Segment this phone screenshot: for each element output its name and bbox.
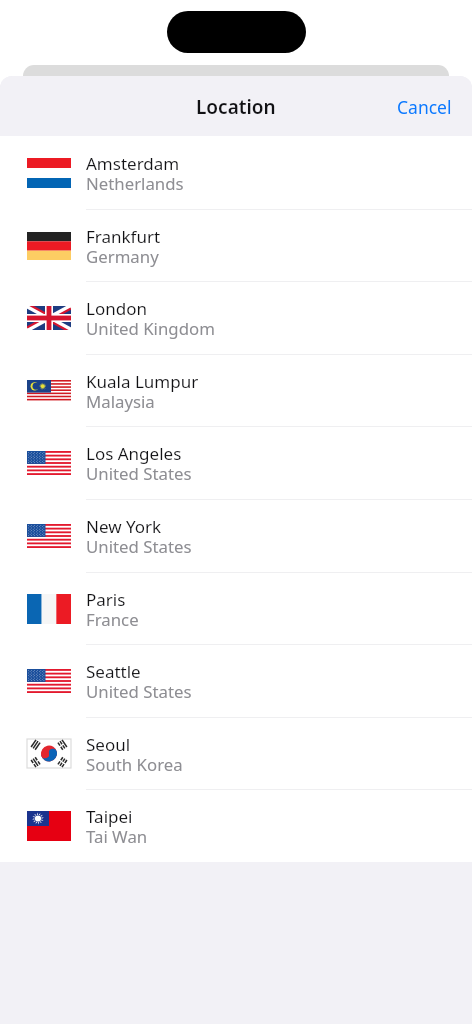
button[interactable]: Los Angeles bbox=[0, 426, 472, 499]
staticText: Kuala Lumpur bbox=[86, 370, 199, 393]
staticText: Germany bbox=[86, 245, 159, 268]
button[interactable]: New York bbox=[0, 499, 472, 572]
button[interactable]: Seattle bbox=[0, 644, 472, 717]
staticText: Amsterdam bbox=[86, 152, 180, 175]
staticText: France bbox=[86, 608, 139, 631]
staticText: United States bbox=[86, 680, 192, 703]
staticText: Malaysia bbox=[86, 390, 155, 413]
staticText: Netherlands bbox=[86, 172, 184, 195]
staticText: Seattle bbox=[86, 660, 141, 683]
staticText: Los Angeles bbox=[86, 442, 182, 465]
button[interactable]: Kuala Lumpur bbox=[0, 354, 472, 427]
staticText: United Kingdom bbox=[86, 317, 215, 340]
staticText: Location bbox=[196, 94, 276, 120]
button[interactable]: Paris bbox=[0, 572, 472, 645]
staticText: Seoul bbox=[86, 733, 131, 756]
staticText: South Korea bbox=[86, 753, 183, 776]
button[interactable]: Amsterdam bbox=[0, 136, 472, 209]
staticText: United States bbox=[86, 535, 192, 558]
button[interactable]: Cancel bbox=[375, 80, 472, 132]
button[interactable]: Frankfurt bbox=[0, 209, 472, 282]
button[interactable]: Taipei bbox=[0, 789, 472, 862]
staticText: Tai Wan bbox=[86, 825, 148, 848]
staticText: United States bbox=[86, 462, 192, 485]
staticText: London bbox=[86, 297, 147, 320]
staticText: Paris bbox=[86, 588, 126, 611]
staticText: New York bbox=[86, 515, 162, 538]
staticText: Frankfurt bbox=[86, 225, 161, 248]
button[interactable]: Seoul bbox=[0, 717, 472, 790]
button[interactable]: London bbox=[0, 281, 472, 354]
staticText: Taipei bbox=[86, 805, 133, 828]
staticText: Cancel bbox=[397, 95, 452, 119]
